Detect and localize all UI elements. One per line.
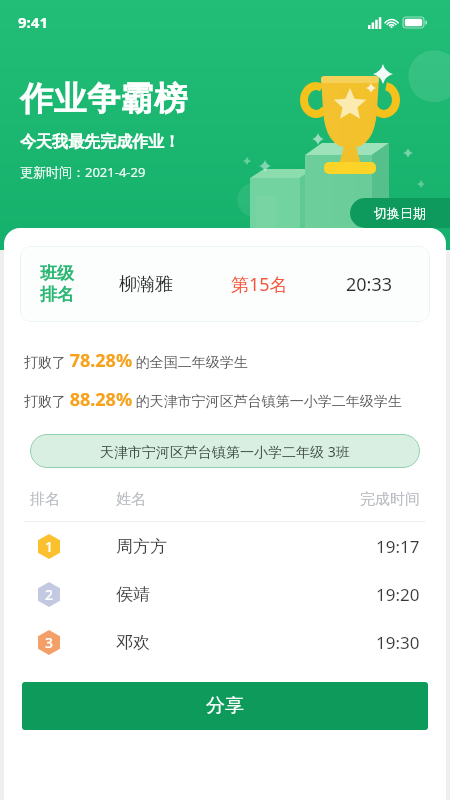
staticText: 排名 [30,490,116,509]
button[interactable]: 班级 [20,246,430,322]
staticText: 作业争霸榜 [20,78,188,120]
staticText: 今天我最先完成作业！ [20,132,180,152]
staticText: 2 [45,585,54,604]
button[interactable]: 2 [4,570,446,618]
staticText: 排名 [40,284,74,305]
staticText: 19:20 [376,583,420,606]
button[interactable]: 分享 [22,682,428,730]
staticText: 19:30 [376,631,420,654]
staticText: 邓欢 [116,632,376,653]
staticText: 打败了 78.28% 的全国二年级学生 [24,348,248,373]
staticText: 打败了 88.28% 的天津市宁河区芦台镇第一小学二年级学生 [24,387,402,412]
staticText: 分享 [206,694,244,718]
staticText: 1 [45,537,54,556]
staticText: 切换日期 [374,205,426,221]
staticText: 完成时间 [360,490,420,509]
staticText: 姓名 [116,490,360,509]
staticText: 3 [45,633,54,652]
button[interactable]: 切换日期 [350,198,450,228]
staticText: 更新时间：2021-4-29 [20,163,146,181]
staticText: 20:33 [346,272,393,297]
button[interactable]: 1 [4,522,446,570]
staticText: 周方方 [116,536,376,557]
staticText: 第15名 [231,272,288,297]
button[interactable]: 3 [4,618,446,666]
staticText: 9:41 [18,12,48,32]
staticText: 侯靖 [116,584,376,605]
staticText: 班级 [40,263,74,284]
staticText: 柳瀚雅 [119,273,173,296]
button[interactable]: 天津市宁河区芦台镇第一小学二年级 3班 [30,434,420,468]
staticText: 19:17 [376,535,420,558]
staticText: 天津市宁河区芦台镇第一小学二年级 3班 [100,442,350,461]
